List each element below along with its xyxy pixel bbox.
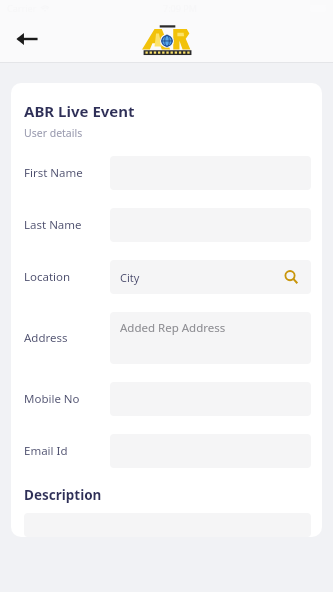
staticText: ABR Live Event (24, 101, 135, 121)
staticText: Mobile No (24, 391, 80, 407)
staticText: User details (24, 126, 83, 140)
button[interactable]: City (110, 260, 311, 294)
staticText: City (120, 270, 140, 285)
button[interactable]: Added Rep Address (110, 312, 311, 364)
staticText: Description (24, 486, 102, 504)
button[interactable]: Back (10, 22, 44, 56)
staticText: Last Name (24, 217, 82, 233)
staticText: First Name (24, 165, 83, 181)
staticText: Added Rep Address (120, 320, 226, 336)
staticText: Address (24, 330, 68, 346)
button[interactable]: Search location (281, 267, 301, 287)
staticText: Location (24, 269, 71, 285)
staticText: Email Id (24, 443, 68, 459)
